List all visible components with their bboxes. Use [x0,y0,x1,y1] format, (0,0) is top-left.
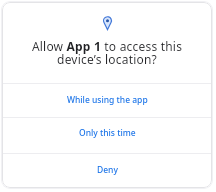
staticText: Deny [97,164,118,176]
button[interactable]: Only this time [2,118,212,153]
button[interactable]: While using the app [2,84,212,117]
staticText: Allow App 1 to access this device’s loca… [2,38,212,68]
staticText: Only this time [79,127,136,139]
button[interactable]: Deny [2,154,212,186]
staticText: While using the app [67,94,148,106]
